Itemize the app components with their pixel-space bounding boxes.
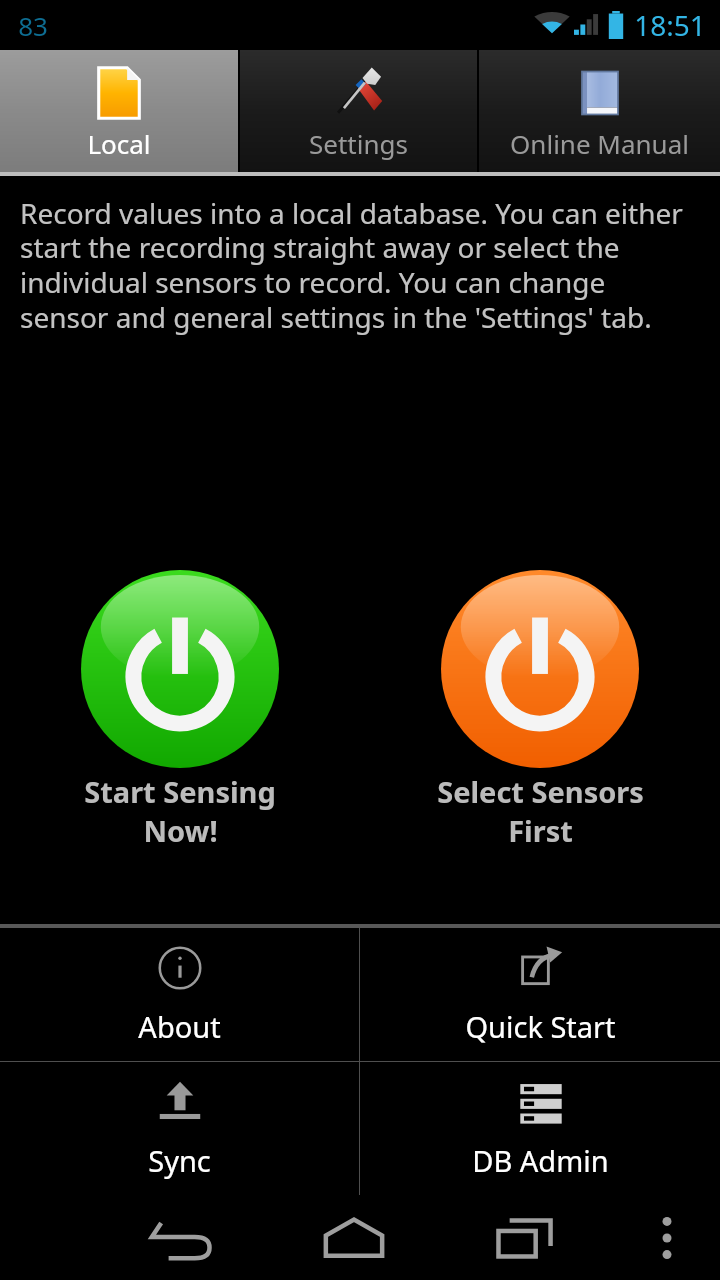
button[interactable]: More options [613, 1195, 720, 1280]
staticText: First [508, 811, 573, 850]
button[interactable]: Sync [0, 1062, 359, 1195]
staticText: Sync [148, 1141, 211, 1180]
staticText: Local [87, 126, 151, 161]
staticText: 83 [18, 8, 48, 43]
button[interactable]: Recent apps [440, 1195, 613, 1280]
staticText: About [138, 1007, 221, 1046]
staticText: Select Sensors [437, 772, 644, 811]
button[interactable]: Start Sensing Now! [0, 570, 360, 850]
button[interactable]: Home [267, 1195, 440, 1280]
staticText: 18:51 [634, 6, 706, 44]
button[interactable]: Select Sensors First [360, 570, 720, 850]
staticText: Settings [309, 126, 408, 161]
button[interactable]: DB Admin [360, 1062, 720, 1195]
button[interactable]: Back [94, 1195, 267, 1280]
button[interactable]: Online Manual [479, 50, 720, 172]
staticText: Quick Start [465, 1007, 616, 1046]
staticText: Start Sensing [84, 772, 276, 811]
button[interactable]: Local [0, 50, 238, 172]
staticText: Now! [143, 811, 218, 850]
button[interactable]: Settings [240, 50, 477, 172]
staticText: Record values into a local database. You… [20, 194, 696, 337]
staticText: Online Manual [510, 126, 689, 161]
button[interactable]: Quick Start [360, 928, 720, 1061]
button[interactable]: About [0, 928, 359, 1061]
staticText: DB Admin [472, 1141, 609, 1180]
